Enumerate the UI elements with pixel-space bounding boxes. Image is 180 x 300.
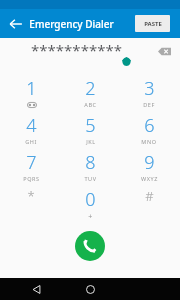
staticText: 2 bbox=[85, 76, 96, 101]
button[interactable]: Backspace bbox=[155, 42, 173, 60]
button[interactable]: 8 bbox=[62, 148, 118, 185]
staticText: 9 bbox=[144, 150, 155, 175]
button[interactable]: 3 bbox=[121, 74, 177, 111]
staticText: MNO bbox=[141, 138, 157, 145]
staticText: 7 bbox=[26, 150, 37, 175]
button[interactable]: Home bbox=[80, 279, 100, 299]
button[interactable]: # bbox=[121, 185, 177, 222]
staticText: 3 bbox=[144, 76, 155, 101]
button[interactable]: PASTE bbox=[135, 15, 170, 32]
staticText: 5 bbox=[85, 113, 96, 138]
staticText: *********** bbox=[31, 40, 122, 60]
button[interactable]: Back bbox=[4, 12, 28, 36]
staticText: 0 bbox=[85, 187, 96, 212]
staticText: 6 bbox=[144, 113, 155, 138]
staticText: DEF bbox=[143, 101, 155, 108]
staticText: PASTE bbox=[144, 20, 162, 28]
staticText: JKL bbox=[86, 138, 96, 145]
button[interactable]: 4 bbox=[3, 111, 59, 148]
button[interactable]: 1 bbox=[3, 74, 59, 111]
staticText: WXYZ bbox=[141, 175, 158, 182]
button[interactable]: Call bbox=[75, 231, 105, 261]
staticText: + bbox=[88, 212, 93, 222]
button[interactable]: 5 bbox=[62, 111, 118, 148]
staticText: 1 bbox=[26, 76, 37, 101]
staticText: PQRS bbox=[23, 175, 40, 182]
button[interactable]: 9 bbox=[121, 148, 177, 185]
button[interactable]: Back bbox=[26, 279, 46, 299]
staticText: # bbox=[145, 187, 154, 205]
staticText: 8 bbox=[85, 150, 96, 175]
staticText: Emergency Dialer bbox=[29, 17, 114, 31]
staticText: 4 bbox=[26, 113, 37, 138]
button[interactable]: 7 bbox=[3, 148, 59, 185]
staticText: ABC bbox=[84, 101, 97, 108]
button[interactable]: * bbox=[3, 185, 59, 222]
staticText: * bbox=[27, 187, 35, 205]
staticText: GHI bbox=[25, 138, 37, 145]
button[interactable]: 6 bbox=[121, 111, 177, 148]
staticText: TUV bbox=[84, 175, 97, 182]
button[interactable]: 2 bbox=[62, 74, 118, 111]
button[interactable]: 0 bbox=[62, 185, 118, 222]
